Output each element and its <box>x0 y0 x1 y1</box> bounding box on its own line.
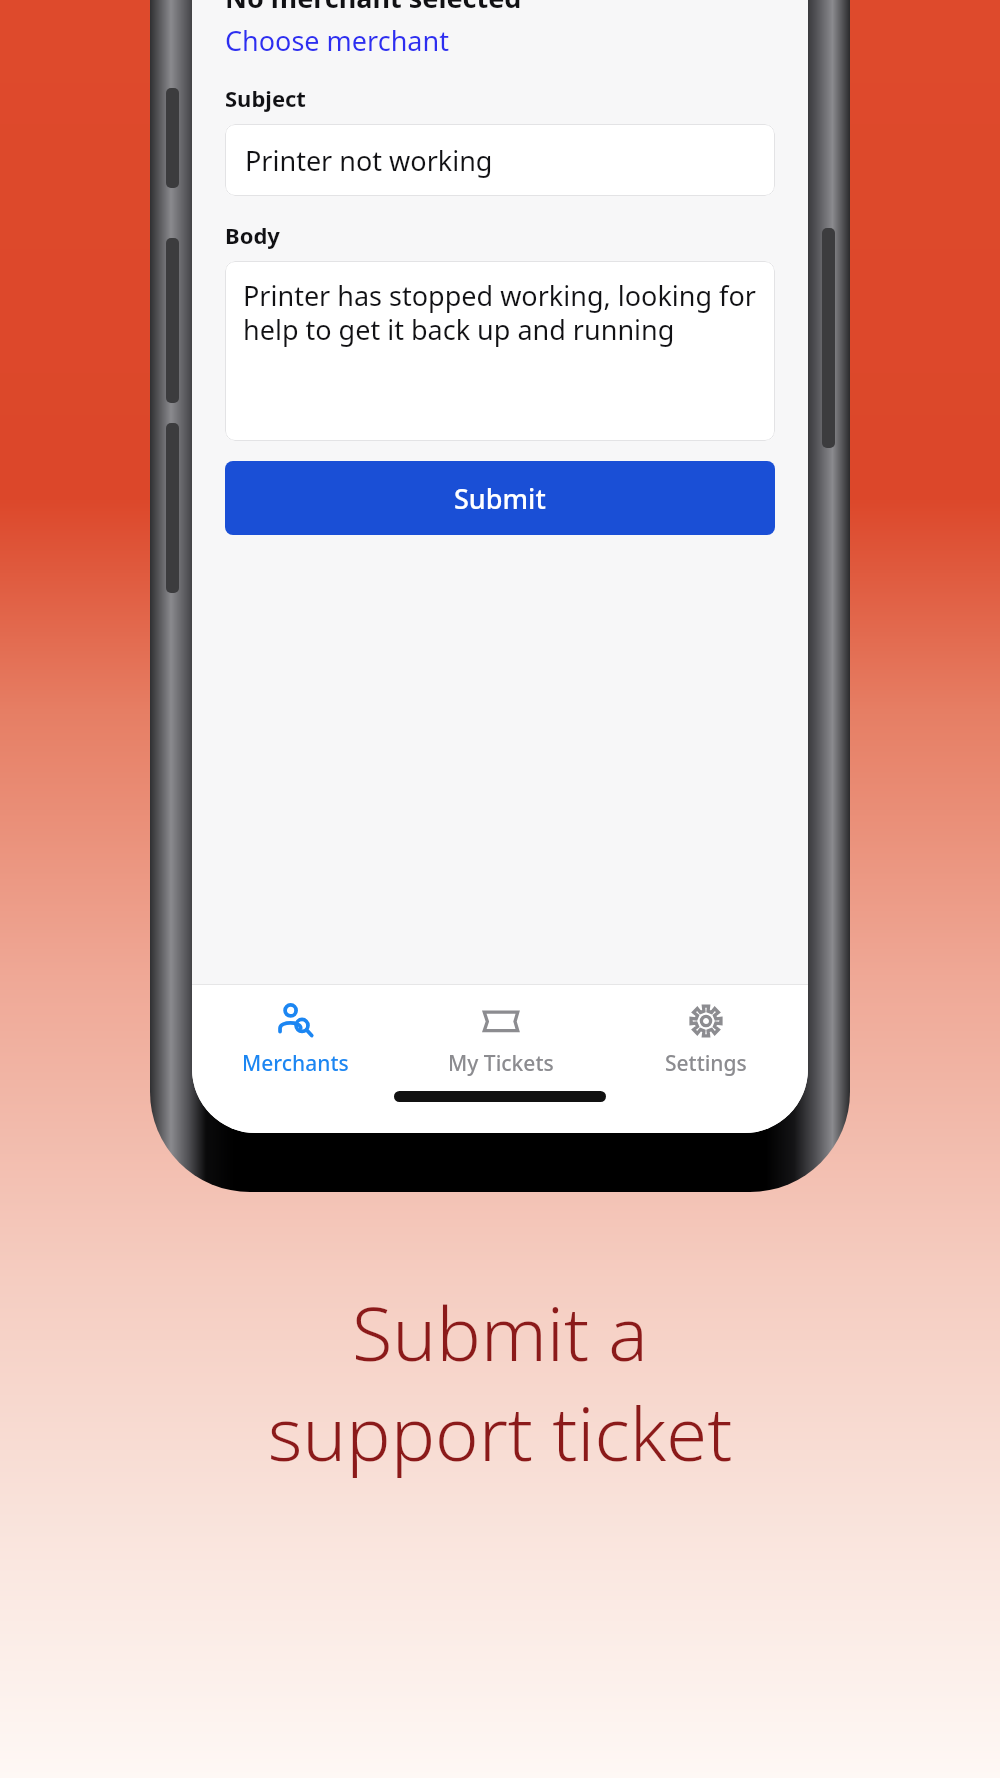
staticText: Submit a support ticket <box>0 1282 1000 1483</box>
staticText: Printer not working <box>245 142 493 179</box>
button[interactable]: My Tickets <box>398 985 603 1078</box>
button[interactable]: Merchants <box>192 985 398 1078</box>
button[interactable]: Settings <box>603 985 808 1078</box>
staticText: Settings <box>665 1049 747 1078</box>
button[interactable]: Choose merchant <box>225 22 449 59</box>
staticText: No merchant selected <box>225 0 522 16</box>
staticText: Subject <box>225 83 306 113</box>
staticText: Submit <box>454 480 546 517</box>
button[interactable]: Printer has stopped working, looking for… <box>225 261 775 441</box>
button[interactable]: Printer not working <box>225 124 775 196</box>
button[interactable]: Submit <box>225 461 775 535</box>
staticText: Printer has stopped working, looking for… <box>243 277 761 348</box>
staticText: My Tickets <box>448 1049 554 1078</box>
staticText: Body <box>225 220 280 250</box>
staticText: Choose merchant <box>225 22 449 59</box>
staticText: Merchants <box>242 1049 349 1078</box>
